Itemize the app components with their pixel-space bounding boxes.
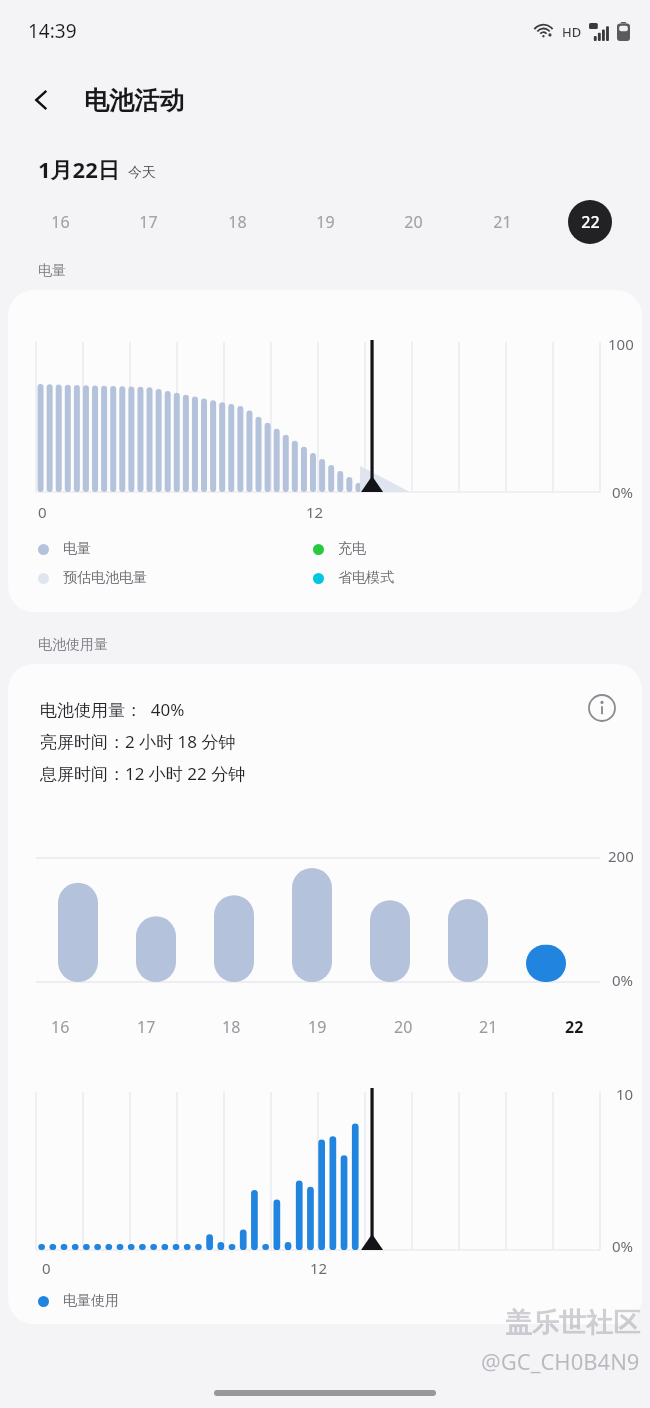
staticText: 20: [404, 211, 423, 233]
staticText: 电量: [63, 540, 91, 558]
staticText: 10: [616, 1084, 634, 1104]
staticText: 12: [306, 502, 324, 522]
staticText: 电池使用量: [38, 636, 108, 654]
button[interactable]: 20: [391, 200, 435, 244]
staticText: 200: [608, 846, 634, 866]
staticText: 21: [479, 1016, 498, 1038]
button[interactable]: 21: [480, 200, 524, 244]
staticText: 0%: [612, 1236, 634, 1256]
staticText: 18: [228, 211, 247, 233]
staticText: 17: [139, 211, 158, 233]
button[interactable]: 18: [215, 200, 259, 244]
staticText: 19: [316, 211, 335, 233]
staticText: 充电: [338, 540, 366, 558]
staticText: 20: [394, 1016, 413, 1038]
staticText: 预估电池电量: [63, 569, 147, 587]
staticText: 16: [51, 211, 70, 233]
staticText: 息屏时间：12 小时 22 分钟: [40, 762, 246, 785]
staticText: 14:39: [28, 18, 77, 44]
staticText: 电池使用量： 40%: [40, 698, 185, 721]
staticText: 0: [38, 502, 47, 522]
button[interactable]: 17: [126, 200, 170, 244]
staticText: 16: [51, 1016, 70, 1038]
staticText: 22: [581, 211, 600, 233]
staticText: 18: [222, 1016, 241, 1038]
staticText: 0: [42, 1258, 51, 1278]
staticText: 盖乐世社区: [505, 1306, 640, 1340]
staticText: @GC_CH0B4N9: [481, 1346, 640, 1376]
staticText: 今天: [128, 164, 156, 182]
staticText: 100: [608, 334, 634, 354]
staticText: 0%: [612, 482, 634, 502]
staticText: 12: [310, 1258, 328, 1278]
staticText: 22: [565, 1016, 584, 1038]
staticText: 电量: [38, 262, 66, 280]
button[interactable]: Back: [14, 72, 70, 128]
staticText: 0%: [612, 970, 634, 990]
button[interactable]: 19: [303, 200, 347, 244]
staticText: HD: [562, 23, 582, 41]
button[interactable]: 16: [38, 200, 82, 244]
staticText: 电池活动: [84, 85, 184, 116]
staticText: 亮屏时间：2 小时 18 分钟: [40, 730, 236, 753]
button[interactable]: Info: [580, 686, 624, 730]
staticText: 21: [493, 211, 512, 233]
staticText: 电量使用: [63, 1292, 119, 1310]
button[interactable]: 22: [568, 200, 612, 244]
staticText: 17: [137, 1016, 156, 1038]
button[interactable]: 100: [8, 290, 642, 612]
staticText: 19: [308, 1016, 327, 1038]
staticText: 省电模式: [338, 569, 394, 587]
staticText: 1月22日: [38, 154, 120, 184]
